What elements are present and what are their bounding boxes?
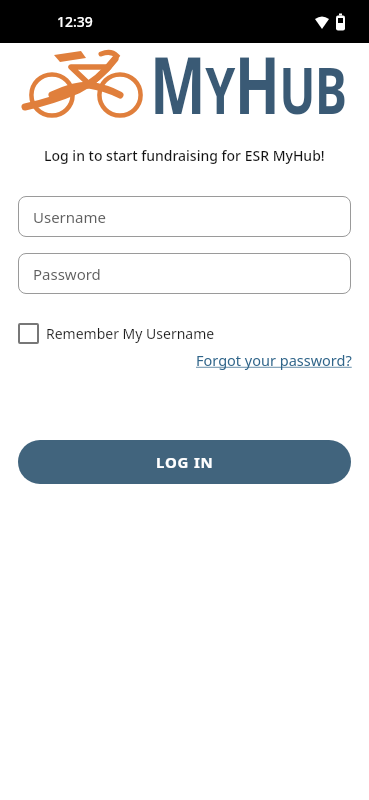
staticText: LOG IN — [156, 452, 214, 472]
button[interactable]: Forgot your password? — [196, 350, 352, 370]
button[interactable]: Remember My Username — [18, 323, 215, 344]
staticText: MYHUB — [150, 29, 347, 137]
staticText: Log in to start fundraising for ESR MyHu… — [44, 146, 325, 165]
staticText: Password — [33, 264, 101, 284]
staticText: Username — [33, 207, 106, 227]
button[interactable]: Username — [18, 196, 351, 237]
staticText: Remember My Username — [46, 324, 215, 343]
button[interactable]: Password — [18, 253, 351, 294]
button[interactable]: LOG IN — [18, 440, 351, 484]
staticText: 12:39 — [57, 12, 93, 31]
